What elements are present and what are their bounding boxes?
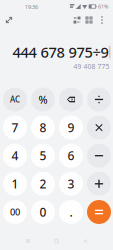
button[interactable]: Unit converter xyxy=(69,12,85,28)
staticText: 49 408 775 xyxy=(73,62,109,71)
staticText: 1 xyxy=(11,176,18,192)
button[interactable]: Multiply xyxy=(87,116,111,140)
staticText: 3 xyxy=(67,176,74,192)
button[interactable]: Divide xyxy=(87,87,111,111)
staticText: 19:36 xyxy=(25,3,38,11)
button[interactable]: Home xyxy=(48,233,64,249)
button[interactable]: 2 xyxy=(31,172,55,196)
staticText: . xyxy=(69,204,72,220)
staticText: 61% xyxy=(98,3,108,10)
button[interactable]: 5 xyxy=(31,144,55,168)
button[interactable]: 1 xyxy=(3,172,27,196)
button[interactable]: AC xyxy=(3,87,27,111)
staticText: 6 xyxy=(67,148,74,164)
button[interactable]: 8 xyxy=(31,116,55,140)
staticText: 4 xyxy=(11,148,18,164)
staticText: 8 xyxy=(39,120,46,135)
button[interactable]: Equals xyxy=(87,200,111,224)
button[interactable]: 4 xyxy=(3,144,27,168)
staticText: AC xyxy=(10,94,20,105)
button[interactable]: Expand xyxy=(1,12,17,28)
staticText: 9 xyxy=(67,120,74,135)
button[interactable]: Subtract xyxy=(87,144,111,168)
staticText: % xyxy=(38,92,47,107)
button[interactable]: 7 xyxy=(3,116,27,140)
button[interactable]: 0 xyxy=(31,200,55,224)
staticText: 444 678 975÷9 xyxy=(12,42,108,62)
button[interactable]: Add xyxy=(87,172,111,196)
staticText: 2 xyxy=(39,176,46,192)
staticText: 5 xyxy=(39,148,46,164)
button[interactable]: More options xyxy=(95,12,109,28)
button[interactable]: . xyxy=(59,200,83,224)
button[interactable]: Backspace xyxy=(59,87,83,111)
button[interactable]: 3 xyxy=(59,172,83,196)
button[interactable]: 00 xyxy=(3,200,27,224)
staticText: 00 xyxy=(10,206,20,218)
button[interactable]: Scientific calculator xyxy=(81,12,97,28)
staticText: 7 xyxy=(11,120,18,135)
button[interactable]: 6 xyxy=(59,144,83,168)
button[interactable]: 9 xyxy=(59,116,83,140)
staticText: 0 xyxy=(39,204,46,220)
button[interactable]: % xyxy=(31,87,55,111)
button[interactable]: Recent apps xyxy=(20,233,36,249)
